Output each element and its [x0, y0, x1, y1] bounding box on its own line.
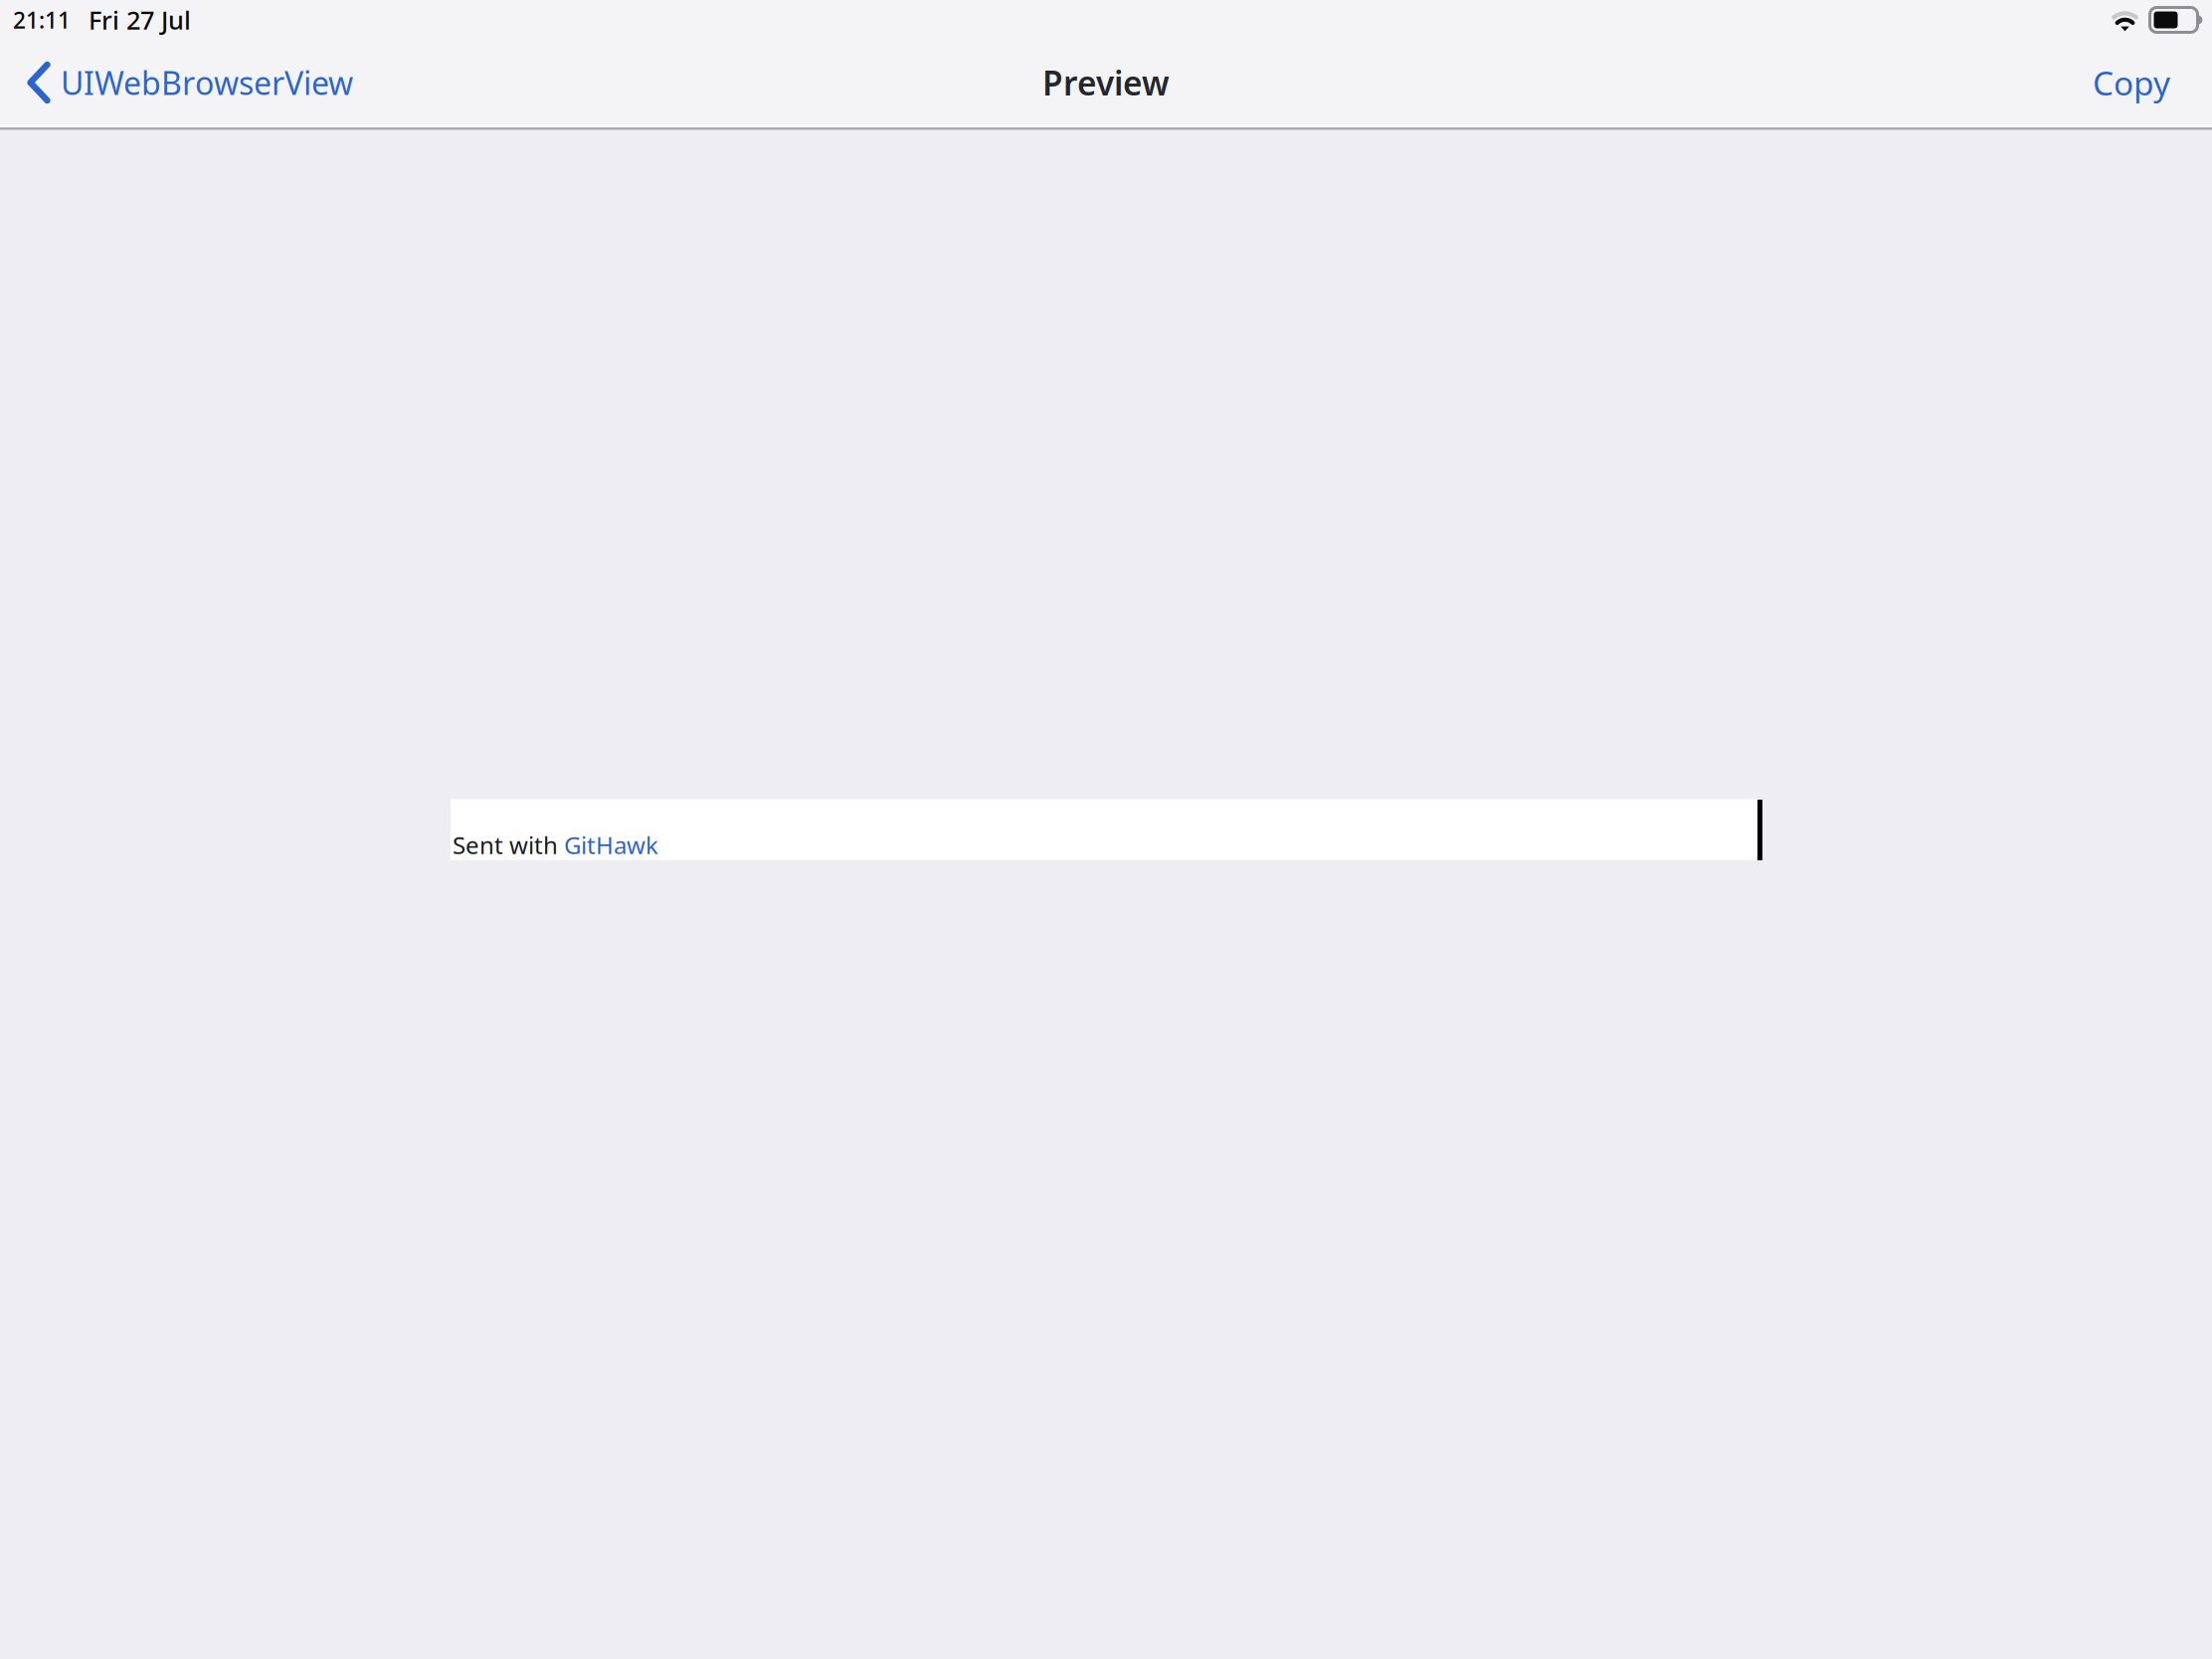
staticText: Fri 27 Jul — [89, 3, 191, 37]
staticText: 21:11 — [13, 5, 71, 35]
button[interactable]: GitHawk — [564, 829, 658, 861]
staticText: Preview — [1042, 61, 1170, 105]
button[interactable]: Copy — [2079, 39, 2184, 126]
staticText: Copy — [2093, 61, 2170, 105]
button[interactable]: UIWebBrowserView — [0, 39, 367, 126]
staticText: GitHawk — [564, 829, 658, 861]
staticText: Sent with — [453, 829, 564, 861]
staticText: UIWebBrowserView — [61, 61, 353, 104]
